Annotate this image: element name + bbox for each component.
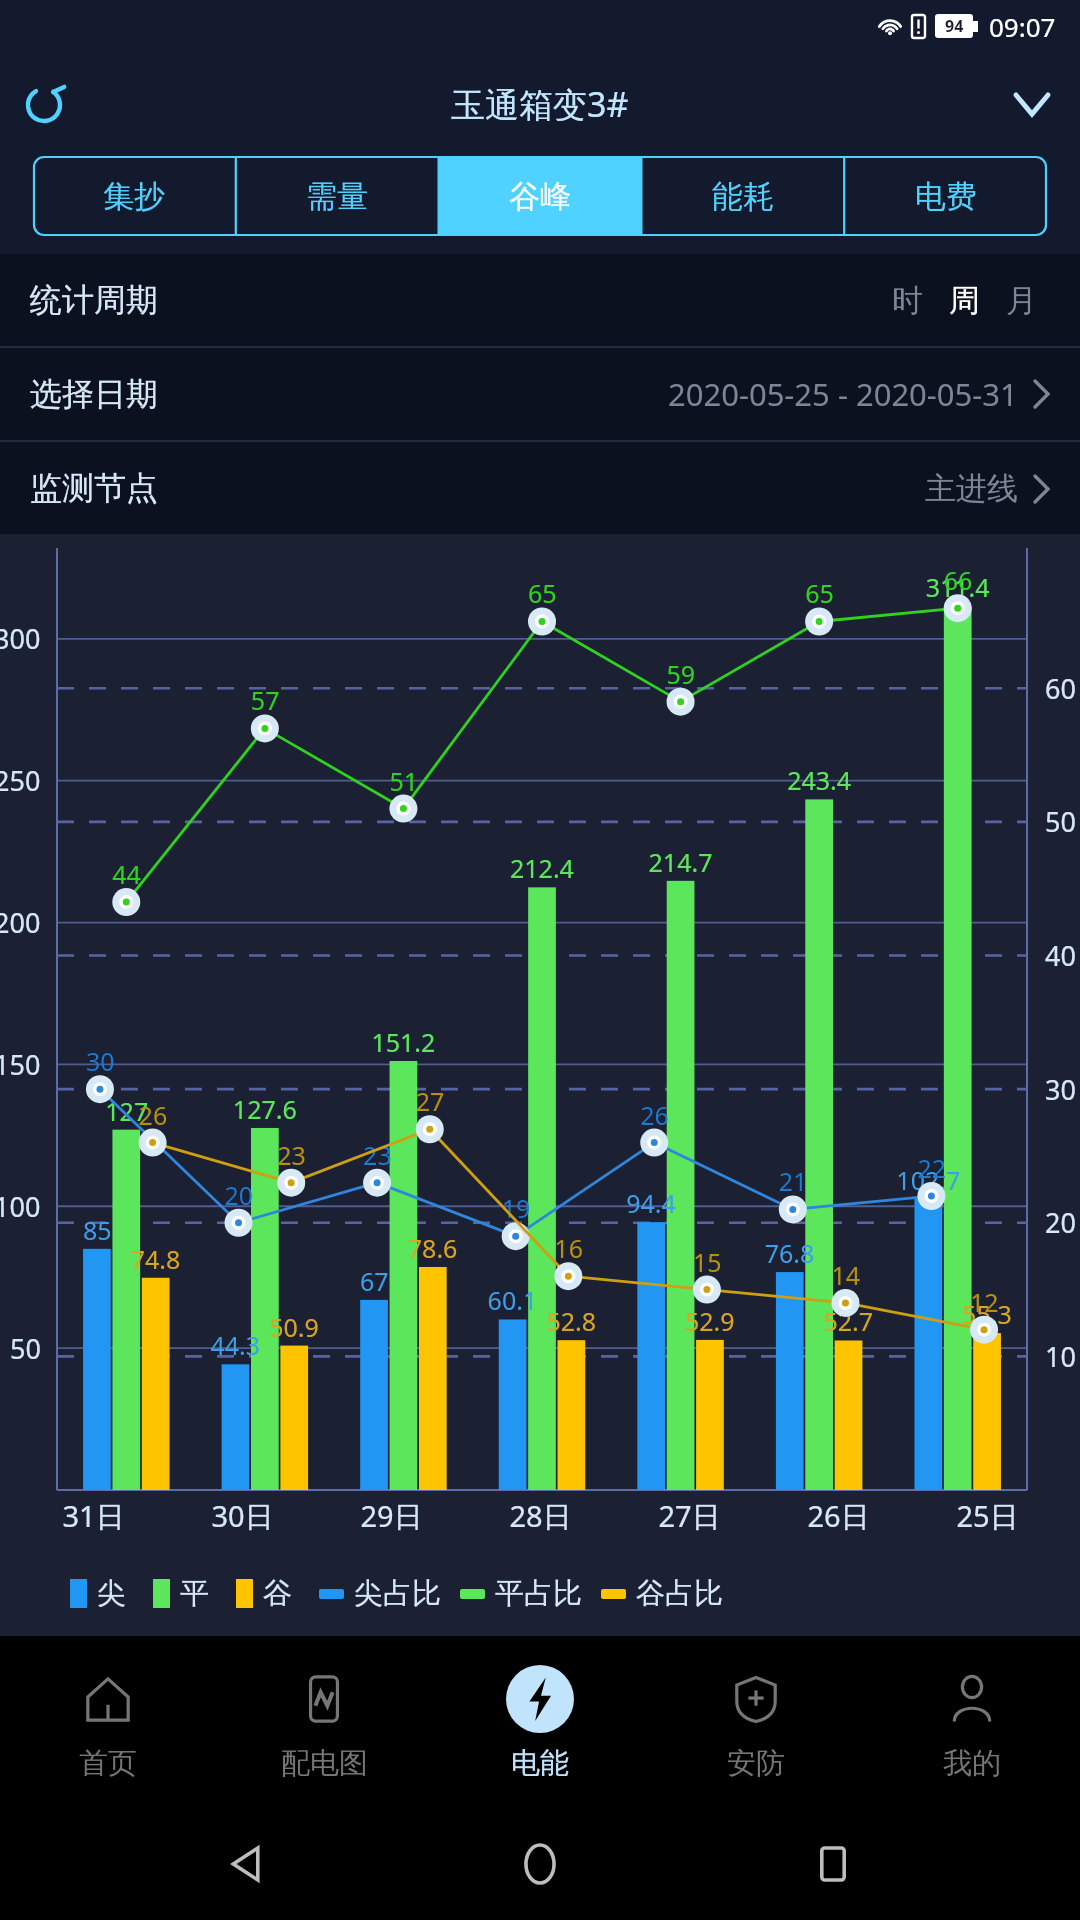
- staticText: 尖占比: [354, 1575, 441, 1612]
- staticText: 选择日期: [30, 374, 158, 414]
- button[interactable]: 选择日期: [30, 348, 1050, 440]
- staticText: 电能: [511, 1745, 569, 1782]
- button[interactable]: 尖: [70, 1575, 126, 1612]
- button[interactable]: 需量: [235, 156, 438, 236]
- staticText: 统计周期: [30, 280, 158, 320]
- button[interactable]: 电费: [844, 156, 1047, 236]
- staticText: 监测节点: [30, 468, 158, 508]
- staticText: 谷: [263, 1575, 292, 1612]
- button[interactable]: 我的: [864, 1636, 1080, 1808]
- button[interactable]: Refresh: [12, 72, 76, 136]
- button[interactable]: 平占比: [460, 1575, 582, 1612]
- staticText: 28日: [509, 1496, 572, 1536]
- staticText: 需量: [306, 177, 368, 216]
- button[interactable]: 时: [892, 281, 923, 320]
- button[interactable]: 谷: [236, 1575, 292, 1612]
- staticText: 94: [945, 15, 964, 37]
- button[interactable]: 安防: [648, 1636, 864, 1808]
- button[interactable]: 集抄: [33, 156, 235, 236]
- staticText: 31日: [62, 1496, 125, 1536]
- staticText: 尖: [97, 1575, 126, 1612]
- staticText: 平: [180, 1575, 209, 1612]
- staticText: 安防: [727, 1745, 785, 1782]
- button[interactable]: 周: [949, 281, 980, 320]
- button[interactable]: Recents: [787, 1818, 879, 1910]
- staticText: 周: [949, 281, 980, 320]
- button[interactable]: 谷峰: [438, 156, 641, 236]
- button[interactable]: Back: [201, 1818, 293, 1910]
- staticText: 谷峰: [509, 177, 571, 216]
- staticText: 主进线: [925, 469, 1018, 508]
- staticText: 电费: [915, 177, 977, 216]
- staticText: 时: [892, 281, 923, 320]
- staticText: 2020-05-25 - 2020-05-31: [668, 373, 1018, 415]
- button[interactable]: 首页: [0, 1636, 216, 1808]
- button[interactable]: 配电图: [216, 1636, 432, 1808]
- staticText: 玉通箱变3#: [451, 81, 629, 127]
- staticText: 30日: [211, 1496, 274, 1536]
- staticText: 谷占比: [636, 1575, 723, 1612]
- staticText: 26日: [807, 1496, 870, 1536]
- staticText: 25日: [956, 1496, 1019, 1536]
- staticText: 月: [1006, 281, 1037, 320]
- staticText: 配电图: [281, 1745, 368, 1782]
- button[interactable]: 监测节点: [30, 442, 1050, 534]
- button[interactable]: 电能: [432, 1636, 648, 1808]
- button[interactable]: 谷占比: [601, 1575, 723, 1612]
- button[interactable]: Expand: [998, 70, 1066, 138]
- button[interactable]: 平: [153, 1575, 209, 1612]
- staticText: 09:07: [989, 9, 1056, 44]
- button[interactable]: Home: [494, 1818, 586, 1910]
- button[interactable]: 能耗: [641, 156, 844, 236]
- staticText: 27日: [658, 1496, 721, 1536]
- button[interactable]: 尖占比: [319, 1575, 441, 1612]
- staticText: 29日: [360, 1496, 423, 1536]
- staticText: 能耗: [712, 177, 774, 216]
- staticText: 集抄: [103, 177, 165, 216]
- button[interactable]: 统计周期: [30, 254, 1050, 346]
- staticText: 平占比: [495, 1575, 582, 1612]
- staticText: 首页: [79, 1745, 137, 1782]
- staticText: 我的: [943, 1745, 1001, 1782]
- button[interactable]: 月: [1006, 281, 1037, 320]
